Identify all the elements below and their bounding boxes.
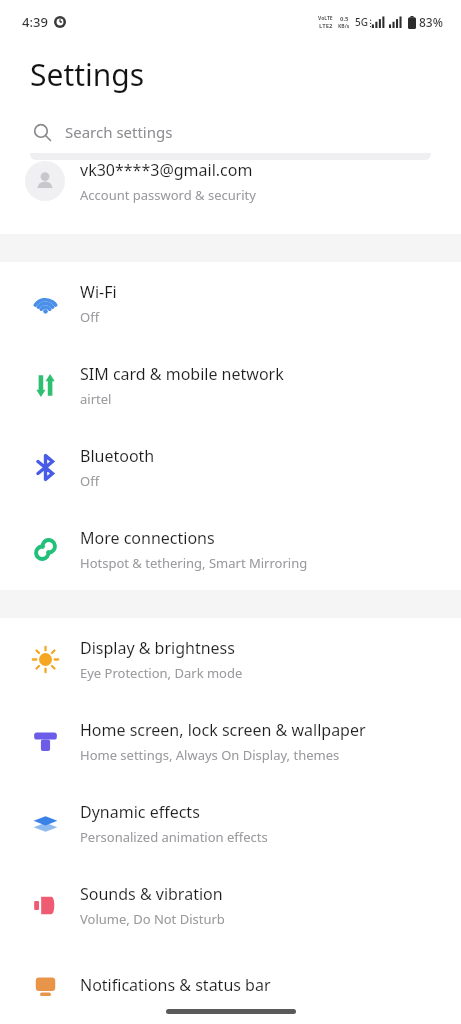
other: More connections [32,536,59,563]
staticText: KB/s [338,23,350,30]
button[interactable]: Dynamic effects [0,782,461,864]
staticText: LTE2 [319,22,333,30]
staticText: Account password & security [80,186,256,204]
staticText: Home settings, Always On Display, themes [80,746,340,764]
other: Sounds and vibration [32,892,59,919]
other: Notifications and status bar [32,972,59,999]
staticText: Dynamic effects [80,801,200,823]
button[interactable]: Notifications and status bar [0,946,461,1024]
staticText: airtel [80,390,112,408]
staticText: Bluetooth [80,445,155,467]
staticText: Volume, Do Not Disturb [80,910,225,928]
staticText: Search settings [65,122,173,142]
other: Home screen, lock screen and wallpaper [32,728,59,755]
staticText: vk30****3@gmail.com [80,159,253,181]
staticText: Personalized animation effects [80,828,268,846]
staticText: 4:39 [22,13,48,31]
staticText: SIM card & mobile network [80,363,284,385]
button[interactable]: SIM card and mobile network [0,344,461,426]
staticText: Display & brightness [80,637,235,659]
staticText: Notifications & status bar [80,974,271,996]
staticText: 0.5 [340,15,349,23]
button[interactable]: Home screen, lock screen and wallpaper [0,700,461,782]
staticText: Sounds & vibration [80,883,223,905]
button[interactable]: Display and brightness [0,618,461,700]
button[interactable]: Bluetooth [0,426,461,508]
staticText: Eye Protection, Dark mode [80,664,243,682]
staticText: 5G [355,15,368,29]
staticText: Off [80,472,100,490]
staticText: Hotspot & tethering, Smart Mirroring [80,554,308,572]
other: Display and brightness [32,646,59,673]
button[interactable]: Sounds and vibration [0,864,461,946]
other: Dynamic effects [32,810,59,837]
button[interactable]: Search settings [0,104,461,160]
other: SIM card and mobile network [32,372,59,399]
other: Wi-Fi [32,290,59,317]
staticText: Home screen, lock screen & wallpaper [80,719,366,741]
button[interactable]: vk30****3@gmail.com [0,160,461,234]
staticText: Wi-Fi [80,281,117,303]
other: Bluetooth [32,454,59,481]
staticText: 83% [419,14,443,30]
staticText: VoLTE [318,15,333,22]
staticText: Settings [30,54,145,95]
staticText: More connections [80,527,215,549]
button[interactable]: Wi-Fi [0,262,461,344]
staticText: Off [80,308,100,326]
button[interactable]: More connections [0,508,461,590]
